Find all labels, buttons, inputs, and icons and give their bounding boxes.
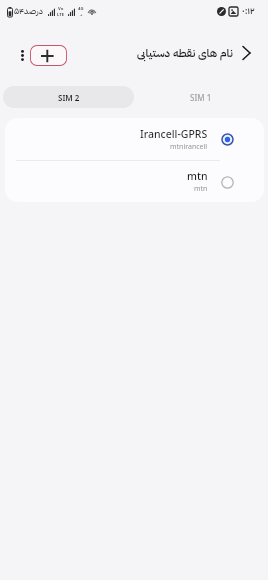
button[interactable]: Irancell-GPRS [5, 118, 264, 160]
staticText: + [80, 12, 83, 18]
button[interactable]: SIM 1 [136, 86, 265, 108]
staticText: mtnirancell [170, 142, 208, 152]
staticText: SIM 1 [190, 92, 212, 103]
staticText: ۵۴درصد [14, 5, 43, 18]
staticText: SIM 2 [58, 92, 80, 103]
button[interactable]: Add APN [30, 45, 67, 66]
button[interactable]: Back [237, 44, 255, 62]
button[interactable]: SIM 2 [3, 86, 134, 108]
staticText: ۰:۱۲ [242, 4, 255, 18]
staticText: LTE [57, 12, 65, 18]
staticText: mtn [194, 184, 208, 194]
staticText: Vo [58, 6, 64, 12]
button[interactable]: More options [17, 44, 28, 66]
staticText: نام های نقطه دستیابی [137, 45, 233, 62]
staticText: Irancell-GPRS [140, 127, 208, 141]
staticText: mtn [187, 169, 208, 183]
button[interactable]: mtn [5, 161, 264, 202]
staticText: 4G [78, 6, 84, 12]
